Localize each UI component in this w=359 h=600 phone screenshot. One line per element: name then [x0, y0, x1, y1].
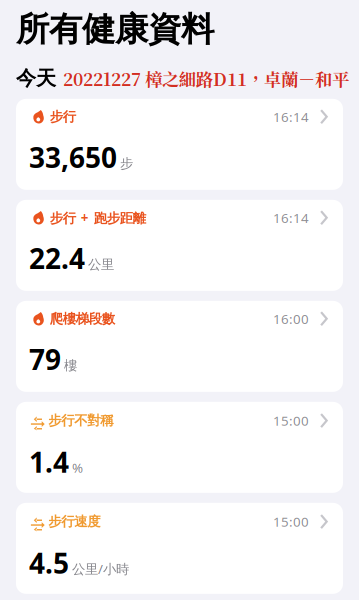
button[interactable]: 步行 — [16, 99, 343, 190]
button[interactable]: 步行不對稱 — [16, 402, 343, 493]
staticText: 15:00 — [273, 412, 309, 429]
button[interactable]: 步行 + 跑步距離 — [16, 200, 343, 291]
staticText: 16:14 — [273, 108, 309, 125]
staticText: 今天 — [16, 66, 56, 91]
staticText: 步行 + 跑步距離 — [50, 209, 146, 226]
staticText: 33,650 — [29, 139, 117, 176]
staticText: 4.5 — [29, 544, 69, 581]
staticText: 15:00 — [273, 513, 309, 530]
button[interactable]: 步行速度 — [16, 503, 343, 594]
staticText: 79 — [29, 341, 61, 378]
staticText: 樓 — [64, 357, 77, 374]
staticText: 步行不對稱 — [48, 412, 113, 429]
staticText: 步 — [120, 155, 133, 172]
staticText: % — [72, 459, 83, 476]
staticText: 20221227 樟之細路D11，卓蘭－和平 — [63, 66, 349, 91]
button[interactable]: 爬樓梯段數 — [16, 301, 343, 392]
staticText: 1.4 — [29, 443, 69, 480]
staticText: 16:00 — [273, 310, 309, 327]
staticText: 所有健康資料 — [16, 9, 214, 50]
staticText: 16:14 — [273, 209, 309, 226]
staticText: 爬樓梯段數 — [50, 310, 115, 327]
staticText: 步行速度 — [48, 513, 100, 530]
staticText: 公里/小時 — [72, 560, 129, 578]
staticText: 22.4 — [29, 240, 85, 277]
staticText: 步行 — [50, 108, 76, 125]
staticText: 公里 — [88, 256, 114, 273]
